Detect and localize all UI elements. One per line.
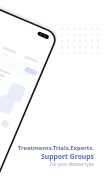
staticText: For your disease type bbox=[49, 161, 94, 167]
staticText: Treatments.Trials.Experts. bbox=[17, 144, 94, 152]
staticText: Support Groups bbox=[41, 152, 94, 161]
